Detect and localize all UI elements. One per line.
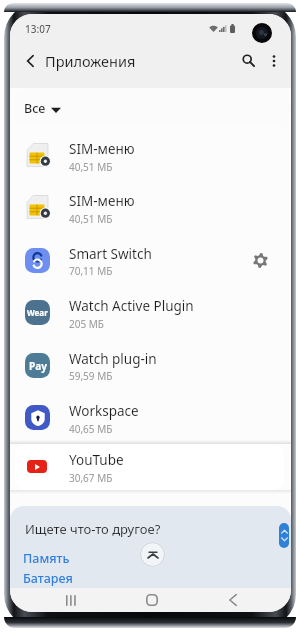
staticText: 13:07: [25, 22, 51, 36]
button[interactable]: Back: [16, 44, 44, 77]
staticText: 205 МБ: [69, 317, 104, 331]
staticText: Watch Active Plugin: [69, 297, 194, 315]
button[interactable]: More options: [262, 44, 286, 77]
staticText: Pay: [29, 359, 47, 373]
button[interactable]: Home: [136, 588, 168, 612]
button[interactable]: Collapse: [140, 542, 165, 567]
staticText: Все: [24, 100, 46, 117]
staticText: 40,51 МБ: [69, 212, 113, 226]
button[interactable]: [10, 394, 291, 440]
staticText: 30,67 МБ: [69, 471, 113, 485]
button[interactable]: Back: [217, 588, 249, 612]
button[interactable]: Recent apps: [55, 588, 87, 612]
staticText: 40,51 МБ: [69, 160, 113, 174]
staticText: Watch plug-in: [69, 350, 157, 368]
staticText: YouTube: [69, 451, 124, 469]
button[interactable]: [10, 184, 291, 230]
button[interactable]: [10, 289, 291, 335]
button[interactable]: [15, 444, 284, 490]
button[interactable]: Батарея: [23, 570, 73, 587]
staticText: SIM-меню: [69, 140, 135, 158]
staticText: Ищете что-то другое?: [25, 520, 161, 538]
staticText: Workspace: [69, 402, 139, 420]
button[interactable]: Все: [10, 88, 291, 126]
button[interactable]: [10, 237, 291, 283]
button[interactable]: [10, 132, 291, 178]
staticText: 59,59 МБ: [69, 369, 113, 383]
staticText: Wear: [27, 307, 48, 318]
staticText: Приложения: [45, 51, 136, 71]
button[interactable]: App settings: [246, 237, 274, 283]
button[interactable]: Search: [234, 44, 262, 77]
staticText: 70,11 МБ: [69, 264, 113, 278]
staticText: SIM-меню: [69, 192, 135, 210]
staticText: 40,65 МБ: [69, 422, 113, 436]
other: Scroll: [279, 523, 289, 548]
button[interactable]: Память: [23, 550, 70, 567]
button[interactable]: [10, 342, 291, 388]
staticText: Smart Switch: [69, 245, 152, 263]
